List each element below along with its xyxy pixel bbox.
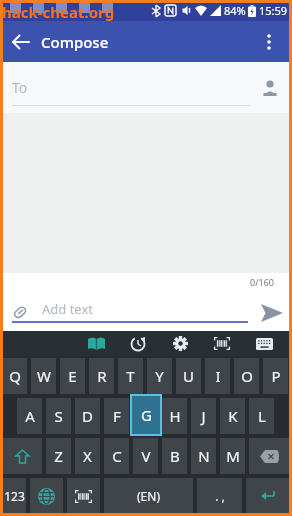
staticText: K bbox=[228, 406, 238, 426]
button[interactable]: K bbox=[220, 398, 245, 434]
staticText: P bbox=[271, 366, 281, 386]
staticText: W bbox=[37, 366, 51, 386]
staticText: N bbox=[198, 446, 210, 466]
staticText: . , bbox=[215, 488, 225, 504]
button[interactable] bbox=[0, 291, 244, 331]
button[interactable]: C bbox=[104, 438, 129, 474]
button[interactable]: U bbox=[176, 358, 201, 394]
button[interactable]: V bbox=[133, 438, 158, 474]
staticText: R bbox=[97, 366, 107, 386]
button[interactable]: I bbox=[205, 358, 230, 394]
button[interactable]: X bbox=[75, 438, 100, 474]
staticText: V bbox=[141, 446, 151, 466]
staticText: F bbox=[113, 406, 121, 426]
button[interactable]: H bbox=[162, 398, 187, 434]
staticText: S bbox=[54, 406, 63, 426]
button[interactable] bbox=[246, 478, 290, 514]
staticText: 15:59 bbox=[259, 3, 288, 18]
staticText: 0/160 bbox=[250, 276, 274, 288]
button[interactable] bbox=[2, 438, 42, 474]
button[interactable] bbox=[245, 331, 283, 356]
staticText: H bbox=[169, 406, 181, 426]
staticText: I bbox=[215, 366, 221, 386]
button[interactable]: 123 bbox=[2, 478, 26, 514]
button[interactable]: P bbox=[263, 358, 288, 394]
staticText: (EN) bbox=[137, 488, 160, 504]
button[interactable] bbox=[77, 331, 115, 356]
button[interactable]: Y bbox=[147, 358, 172, 394]
staticText: U bbox=[183, 366, 194, 386]
staticText: X bbox=[83, 446, 92, 466]
button[interactable]: J bbox=[191, 398, 216, 434]
staticText: O bbox=[241, 366, 253, 386]
button[interactable]: (EN) bbox=[104, 478, 193, 514]
staticText: D bbox=[82, 406, 93, 426]
button[interactable] bbox=[249, 438, 289, 474]
staticText: C bbox=[112, 446, 122, 466]
button[interactable] bbox=[203, 331, 241, 356]
button[interactable]: T bbox=[118, 358, 143, 394]
staticText: To bbox=[12, 78, 28, 97]
staticText: hack-cheat.org bbox=[2, 2, 115, 22]
button[interactable] bbox=[30, 478, 63, 514]
staticText: T bbox=[126, 366, 135, 386]
staticText: L bbox=[258, 406, 266, 426]
button[interactable]: To bbox=[0, 62, 292, 113]
staticText: J bbox=[201, 406, 206, 426]
button[interactable] bbox=[246, 21, 292, 62]
button[interactable] bbox=[67, 478, 100, 514]
staticText: E bbox=[68, 366, 77, 386]
button[interactable] bbox=[119, 331, 157, 356]
button[interactable]: L bbox=[249, 398, 274, 434]
staticText: Y bbox=[155, 366, 164, 386]
button[interactable] bbox=[161, 331, 199, 356]
staticText: B bbox=[170, 446, 180, 466]
button[interactable]: G bbox=[131, 395, 161, 435]
button[interactable]: . , bbox=[197, 478, 242, 514]
button[interactable]: N bbox=[191, 438, 216, 474]
button[interactable]: B bbox=[162, 438, 187, 474]
staticText: G bbox=[141, 405, 152, 425]
staticText: 84% bbox=[224, 3, 246, 18]
button[interactable]: Z bbox=[46, 438, 71, 474]
button[interactable]: S bbox=[46, 398, 71, 434]
button[interactable]: D bbox=[75, 398, 100, 434]
staticText: 123 bbox=[4, 488, 25, 504]
button[interactable] bbox=[0, 21, 41, 62]
button[interactable]: F bbox=[104, 398, 129, 434]
button[interactable]: M bbox=[220, 438, 245, 474]
button[interactable] bbox=[133, 398, 158, 434]
staticText: Add text bbox=[42, 300, 94, 318]
button[interactable]: R bbox=[89, 358, 114, 394]
staticText: M bbox=[226, 446, 240, 466]
button[interactable]: A bbox=[17, 398, 42, 434]
button[interactable]: Q bbox=[2, 358, 27, 394]
button[interactable]: O bbox=[234, 358, 259, 394]
button[interactable]: W bbox=[31, 358, 56, 394]
staticText: A bbox=[25, 406, 35, 426]
staticText: Z bbox=[54, 446, 63, 466]
staticText: Compose bbox=[41, 32, 109, 52]
button[interactable] bbox=[252, 295, 292, 331]
staticText: Q bbox=[9, 366, 21, 386]
button[interactable]: E bbox=[60, 358, 85, 394]
